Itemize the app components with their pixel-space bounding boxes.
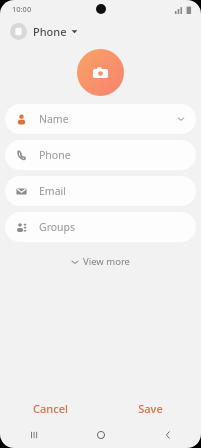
staticText: Groups <box>39 220 76 234</box>
staticText: Save <box>138 401 163 416</box>
button[interactable]: Add contact photo <box>77 49 124 96</box>
button[interactable]: Groups <box>5 212 196 242</box>
button[interactable]: Phone <box>5 140 196 170</box>
button[interactable]: Cancel <box>0 395 100 422</box>
staticText: Email <box>39 184 66 198</box>
button[interactable]: Back <box>134 422 201 448</box>
staticText: Cancel <box>33 401 68 416</box>
button[interactable]: Email <box>5 176 196 206</box>
staticText: View more <box>83 255 130 268</box>
staticText: Phone <box>39 148 71 162</box>
staticText: Name <box>39 112 69 126</box>
button[interactable]: Home <box>67 422 134 448</box>
button[interactable]: View more <box>63 251 138 272</box>
button[interactable]: Recent apps <box>0 422 67 448</box>
staticText: 10:00 <box>12 4 32 14</box>
button[interactable]: Phone <box>8 20 80 43</box>
button[interactable]: Name <box>5 104 196 134</box>
button[interactable]: Save <box>100 395 201 422</box>
staticText: Phone <box>33 24 67 39</box>
